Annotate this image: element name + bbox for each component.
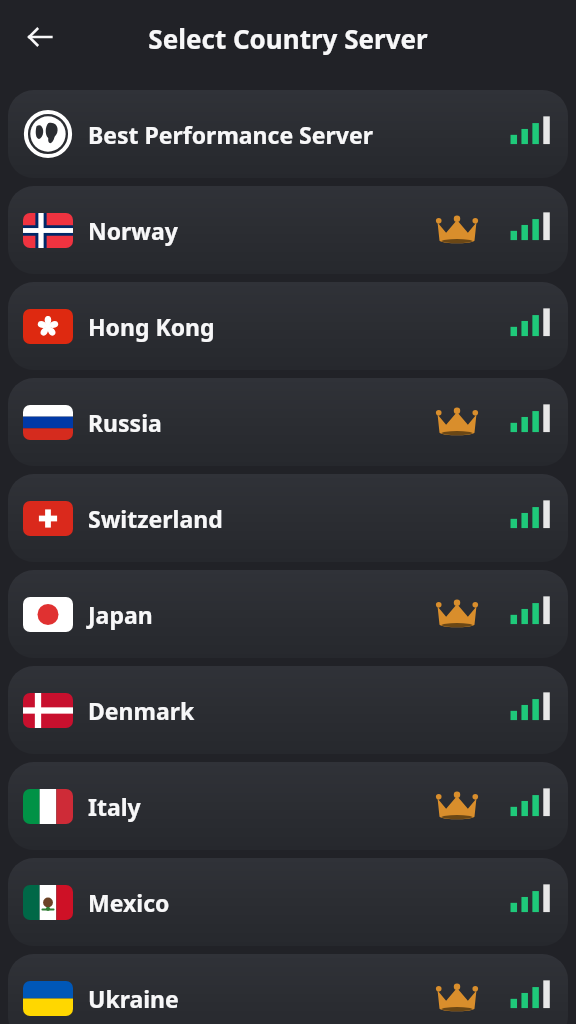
staticText: Mexico: [88, 887, 430, 918]
button[interactable]: Back: [14, 11, 66, 63]
button[interactable]: Hong Kong: [8, 282, 568, 370]
button[interactable]: Russia: [8, 378, 568, 466]
staticText: Russia: [88, 407, 430, 438]
staticText: Hong Kong: [88, 311, 430, 342]
staticText: Switzerland: [88, 503, 430, 534]
button[interactable]: Ukraine: [8, 954, 568, 1024]
staticText: Best Performance Server: [88, 119, 430, 150]
button[interactable]: Denmark: [8, 666, 568, 754]
staticText: Ukraine: [88, 983, 430, 1014]
button[interactable]: Norway: [8, 186, 568, 274]
button[interactable]: Japan: [8, 570, 568, 658]
button[interactable]: Switzerland: [8, 474, 568, 562]
staticText: Select Country Server: [148, 21, 428, 56]
button[interactable]: Italy: [8, 762, 568, 850]
staticText: Denmark: [88, 695, 430, 726]
button[interactable]: Mexico: [8, 858, 568, 946]
staticText: Norway: [88, 215, 430, 246]
staticText: Italy: [88, 791, 430, 822]
staticText: Japan: [88, 599, 430, 630]
button[interactable]: Best Performance Server: [8, 90, 568, 178]
